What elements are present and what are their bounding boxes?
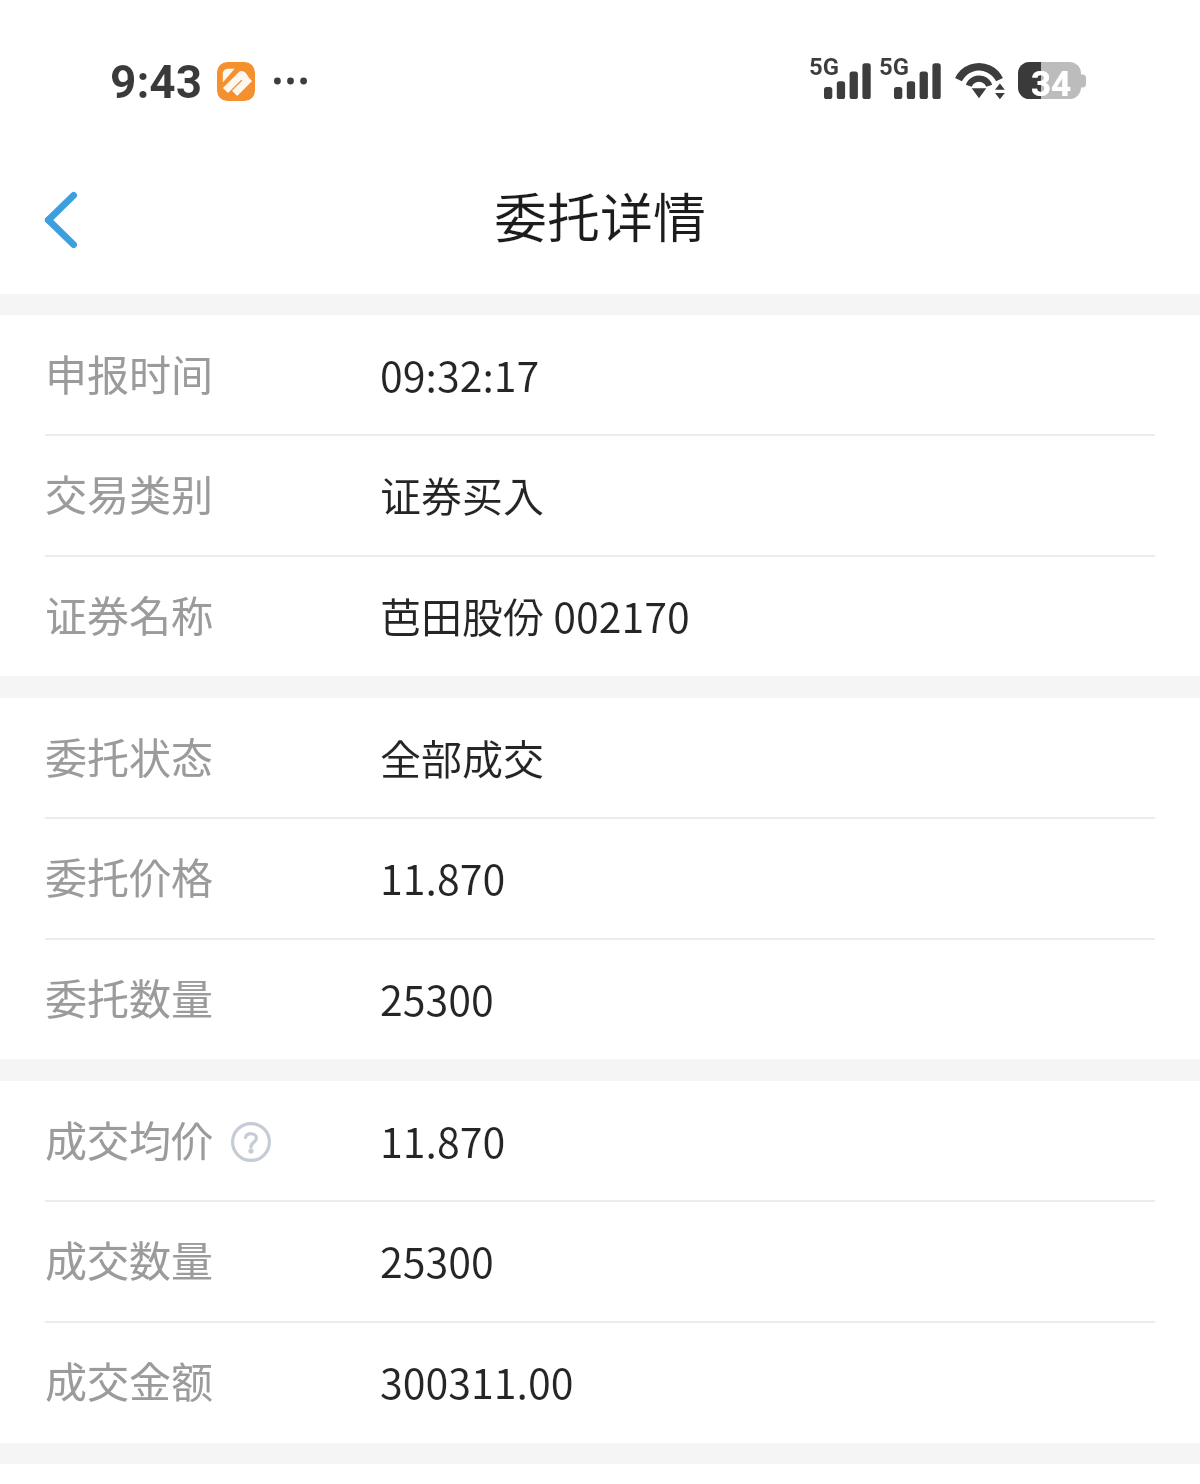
staticText: 交易类别 [45,462,214,523]
button[interactable]: Help [230,1121,272,1163]
staticText: 芭田股份 002170 [380,585,690,644]
staticText: 25300 [380,1230,494,1289]
staticText: 09:32:17 [380,344,540,403]
staticText: 全部成交 [380,727,544,786]
staticText: 34 [1031,64,1072,100]
staticText: 成交数量 [45,1228,214,1289]
button[interactable]: Back [18,177,104,263]
staticText: 申报时间 [45,342,214,403]
staticText: 5G [879,53,910,81]
staticText: 25300 [380,968,494,1027]
staticText: 委托详情 [494,177,706,254]
staticText: 9:43 [110,55,203,109]
staticText: 委托数量 [45,966,214,1027]
button[interactable]: 成交均价 [0,1081,1200,1201]
staticText: 证券买入 [380,464,544,523]
button[interactable]: 成交数量 [0,1201,1200,1322]
button[interactable]: 成交金额 [0,1322,1200,1443]
button[interactable]: 申报时间 [0,315,1200,435]
button[interactable]: 交易类别 [0,435,1200,556]
staticText: 11.870 [380,847,506,906]
staticText: 5G [809,53,840,81]
staticText: 委托价格 [45,845,214,906]
staticText: 成交金额 [45,1349,214,1410]
button[interactable]: 委托价格 [0,818,1200,939]
staticText: 成交均价 [45,1108,214,1169]
button[interactable]: 委托数量 [0,939,1200,1059]
staticText: 11.870 [380,1110,506,1169]
staticText: 证券名称 [45,583,214,644]
staticText: 委托状态 [45,725,214,786]
button[interactable]: 证券名称 [0,556,1200,676]
staticText: 300311.00 [380,1351,574,1410]
button[interactable]: 委托状态 [0,698,1200,818]
